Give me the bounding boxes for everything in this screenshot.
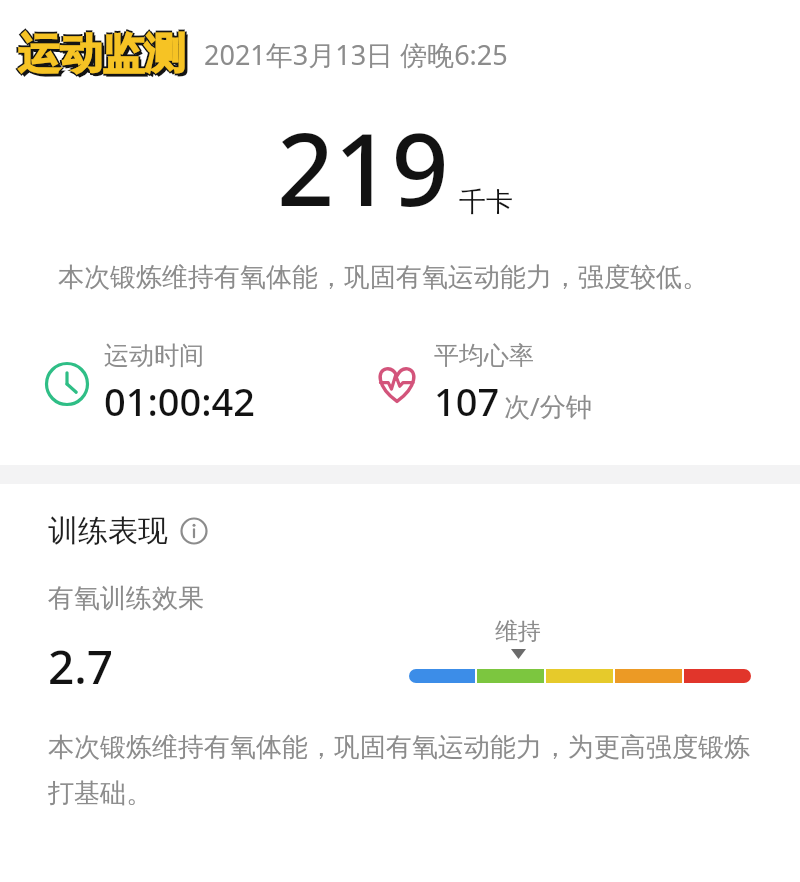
staticText: 训练表现 bbox=[48, 512, 168, 550]
staticText: 运动监测 bbox=[21, 31, 189, 84]
staticText: 运动监测 bbox=[18, 30, 186, 83]
staticText: 2021年3月13日 傍晚6:25 bbox=[204, 36, 508, 73]
staticText: 219 bbox=[277, 99, 449, 235]
staticText: 维持 bbox=[495, 617, 541, 646]
button[interactable]: Duration bbox=[44, 340, 256, 427]
other: Average heart rate bbox=[374, 361, 420, 407]
staticText: 107 bbox=[434, 375, 500, 427]
button[interactable]: 训练表现 bbox=[48, 512, 208, 550]
staticText: 次/分钟 bbox=[504, 388, 592, 424]
staticText: 01:00:42 bbox=[104, 375, 256, 427]
button[interactable]: Info bbox=[180, 517, 208, 545]
staticText: 平均心率 bbox=[434, 340, 534, 371]
staticText: 运动时间 bbox=[104, 340, 204, 371]
staticText: 运动监测 bbox=[18, 28, 186, 81]
staticText: 本次锻炼维持有氧体能，巩固有氧运动能力，为更高强度锻炼打基础。 bbox=[48, 731, 762, 810]
other: Duration bbox=[44, 361, 90, 407]
staticText: 运动监测 bbox=[18, 26, 186, 79]
staticText: 运动监测 bbox=[16, 28, 184, 81]
staticText: 千卡 bbox=[459, 185, 513, 219]
staticText: 运动监测 bbox=[20, 28, 188, 81]
staticText: 有氧训练效果 bbox=[48, 582, 204, 615]
button[interactable]: 运动监测 bbox=[18, 28, 186, 81]
staticText: 本次锻炼维持有氧体能，巩固有氧运动能力，强度较低。 bbox=[58, 261, 742, 294]
staticText: 2.7 bbox=[48, 635, 114, 695]
button[interactable]: Average heart rate bbox=[374, 340, 592, 427]
